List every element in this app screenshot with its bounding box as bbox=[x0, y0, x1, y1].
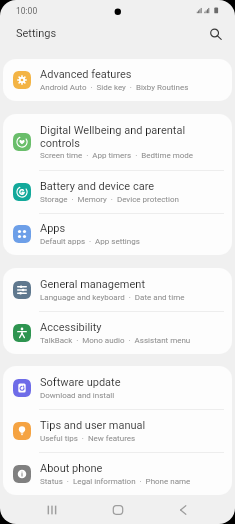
button[interactable]: Recent apps bbox=[38, 496, 66, 524]
staticText: Language and keyboard · Date and time bbox=[40, 293, 185, 302]
button[interactable]: General management bbox=[3, 268, 232, 311]
staticText: General management bbox=[40, 278, 145, 291]
button[interactable]: Software update bbox=[3, 366, 232, 409]
staticText: Battery and device care bbox=[40, 180, 155, 193]
staticText: Android Auto · Side key · Bixby Routines bbox=[40, 83, 189, 92]
button[interactable]: About phone bbox=[3, 452, 232, 495]
staticText: Default apps · App settings bbox=[40, 237, 140, 246]
button[interactable]: Home bbox=[104, 496, 132, 524]
staticText: Apps bbox=[40, 222, 66, 235]
button[interactable]: Apps bbox=[3, 213, 232, 255]
staticText: Status · Legal information · Phone name bbox=[40, 477, 191, 486]
staticText: Settings bbox=[16, 27, 57, 40]
staticText: 10:00 bbox=[16, 6, 38, 16]
button[interactable]: Advanced features bbox=[3, 59, 232, 101]
staticText: Accessibility bbox=[40, 321, 102, 334]
staticText: Useful tips · New features bbox=[40, 434, 136, 443]
staticText: Tips and user manual bbox=[40, 419, 146, 432]
button[interactable]: Back bbox=[170, 496, 198, 524]
staticText: TalkBack · Mono audio · Assistant menu bbox=[40, 336, 191, 345]
staticText: Software update bbox=[40, 376, 121, 389]
staticText: About phone bbox=[40, 462, 103, 475]
staticText: Storage · Memory · Device protection bbox=[40, 195, 179, 204]
button[interactable]: Search bbox=[204, 23, 226, 45]
staticText: Advanced features bbox=[40, 68, 132, 81]
button[interactable]: Tips and user manual bbox=[3, 409, 232, 452]
staticText: Digital Wellbeing and parental controls bbox=[40, 124, 224, 149]
button[interactable]: Battery and device care bbox=[3, 170, 232, 213]
staticText: Download and install bbox=[40, 391, 115, 400]
button[interactable]: Digital Wellbeing and parental controls bbox=[3, 114, 232, 170]
staticText: Screen time · App timers · Bedtime mode bbox=[40, 151, 194, 160]
button[interactable]: Accessibility bbox=[3, 311, 232, 354]
